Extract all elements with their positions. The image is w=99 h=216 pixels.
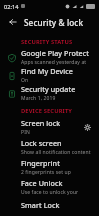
staticText: 2 fingerprints set up [21,169,71,176]
staticText: Screen lock [21,118,61,128]
button[interactable]: Fingerprint [0,157,99,177]
staticText: Face Unlock [21,178,63,188]
staticText: Use face to unlock your phone [21,189,93,196]
staticText: On [21,77,29,84]
staticText: Google Play Protect [21,48,90,58]
staticText: March 1, 2019 [21,95,56,102]
staticText: Find My Device [21,66,73,76]
staticText: SECURITY STATUS [21,38,73,46]
staticText: 02:14 [4,3,19,10]
staticText: PIN [21,129,30,136]
button[interactable]: Screen lock [0,117,99,137]
button[interactable]: Find My Device [0,66,99,84]
staticText: Lock screen preferences [21,138,93,148]
staticText: Fingerprint [21,158,60,168]
staticText: DEVICE SECURITY [21,107,73,115]
staticText: Security & lock screen [24,17,94,28]
staticText: Apps scanned yesterday at 20:13 [21,59,93,66]
button[interactable]: Google Play Protect [0,48,99,66]
staticText: Show all notification content [21,149,91,156]
button[interactable]: Lock screen preferences [0,137,99,157]
button[interactable]: Face Unlock [0,177,99,197]
button[interactable]: Screen lock settings [81,121,93,133]
button[interactable]: Smart Lock [0,197,99,213]
button[interactable]: Back [5,14,21,30]
staticText: Smart Lock [21,200,60,210]
button[interactable]: Security update [0,84,99,102]
staticText: Security update [21,84,76,94]
